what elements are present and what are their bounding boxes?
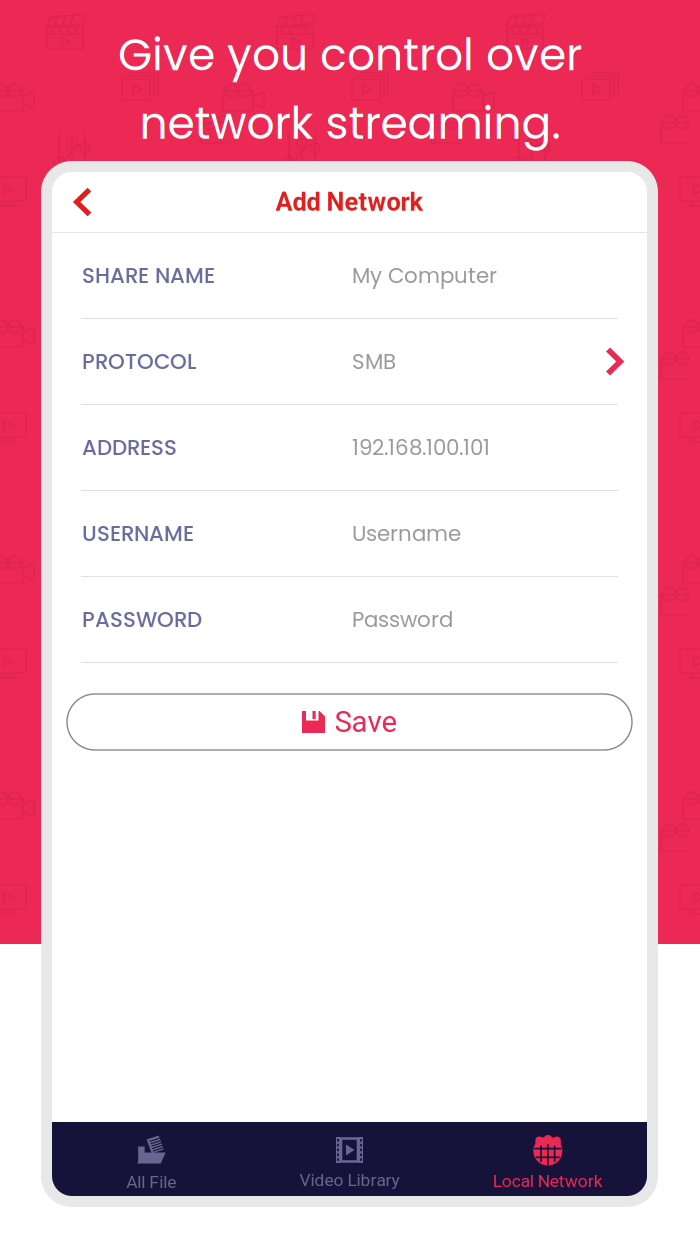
- staticText: Add Network: [275, 187, 423, 217]
- staticText: Save: [334, 705, 397, 739]
- staticText: All File: [126, 1172, 176, 1192]
- button[interactable]: PROTOCOL: [52, 319, 647, 404]
- staticText: network streaming.: [139, 93, 560, 154]
- staticText: Video Library: [299, 1170, 399, 1190]
- staticText: 192.168.100.101: [352, 433, 490, 462]
- staticText: PROTOCOL: [82, 347, 196, 376]
- staticText: USERNAME: [82, 519, 194, 548]
- staticText: My Computer: [352, 261, 497, 290]
- staticText: PASSWORD: [82, 605, 202, 634]
- button[interactable]: Back: [52, 172, 114, 232]
- staticText: Username: [352, 519, 461, 548]
- button[interactable]: All File: [52, 1122, 250, 1196]
- button[interactable]: Video Library: [250, 1122, 449, 1196]
- staticText: Password: [352, 605, 453, 634]
- staticText: SMB: [352, 347, 396, 376]
- staticText: Give you control over: [118, 24, 582, 86]
- staticText: SHARE NAME: [82, 261, 215, 290]
- button[interactable]: Local Network: [449, 1122, 647, 1196]
- button[interactable]: Save: [67, 694, 632, 750]
- staticText: Local Network: [493, 1171, 603, 1191]
- staticText: ADDRESS: [82, 433, 177, 462]
